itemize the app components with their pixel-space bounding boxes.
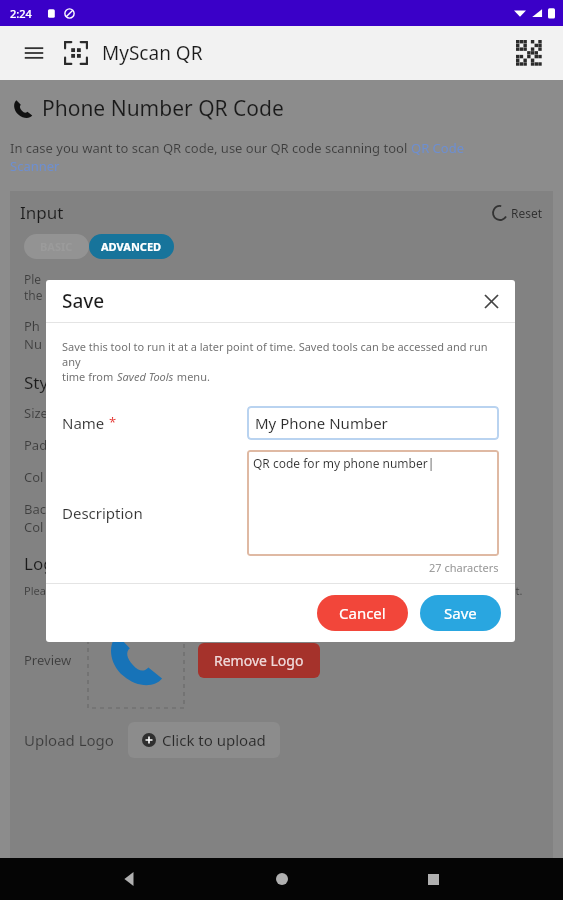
button[interactable]: Recent apps	[411, 858, 455, 900]
button[interactable]: Cancel	[339, 603, 386, 623]
staticText: Saved Tools	[117, 369, 174, 384]
staticText: Cancel	[339, 603, 386, 623]
staticText: QR Code	[411, 139, 465, 157]
staticText: Scanner	[10, 157, 60, 175]
staticText: Sty	[24, 371, 49, 394]
button[interactable]: ADVANCED	[101, 239, 162, 254]
staticText: Input	[20, 201, 64, 224]
staticText: Click to upload	[162, 730, 266, 750]
staticText: Logo	[24, 552, 64, 575]
staticText: Pad	[24, 436, 48, 454]
staticText: Preview	[24, 651, 72, 669]
staticText: Save this tool to run it at a later poin…	[62, 339, 499, 369]
staticText: 27 characters	[429, 560, 499, 575]
staticText: Remove Logo	[214, 651, 304, 670]
staticText: Col	[24, 518, 44, 536]
button[interactable]: Close	[477, 287, 505, 315]
staticText: Col	[24, 468, 44, 486]
staticText: Phone Number QR Code	[42, 94, 284, 123]
staticText: In case you want to scan QR code, use ou…	[10, 139, 411, 157]
button[interactable]: Click to upload	[142, 730, 266, 750]
button[interactable]: Scan QR code	[509, 33, 549, 73]
staticText: Size	[24, 404, 48, 422]
staticText: menu.	[174, 369, 210, 384]
button[interactable]: QR code for my phone number|	[253, 455, 499, 556]
button[interactable]: My Phone Number	[255, 406, 499, 440]
staticText: My Phone Number	[255, 413, 388, 433]
staticText: MyScan QR	[102, 40, 203, 66]
button[interactable]: Remove Logo	[214, 651, 304, 670]
staticText: Upload Logo	[24, 730, 114, 750]
staticText: *	[109, 413, 117, 431]
staticText: Ph	[24, 317, 40, 335]
staticText: Ple	[24, 271, 42, 287]
staticText: Save	[444, 603, 477, 623]
staticText: Description	[62, 503, 143, 523]
staticText: Nu	[24, 335, 42, 353]
staticText: ADVANCED	[101, 239, 162, 254]
staticText: Please upload a logo from your device (s…	[24, 583, 523, 598]
button[interactable]: Back	[108, 858, 152, 900]
button[interactable]: Reset	[493, 205, 543, 221]
staticText: Name	[62, 413, 109, 433]
button[interactable]: Open navigation menu	[14, 33, 54, 73]
button[interactable]: Home	[260, 858, 304, 900]
staticText: 2:24	[10, 6, 32, 21]
button[interactable]: Save	[444, 603, 477, 623]
staticText: Bac	[24, 500, 46, 518]
staticText: the	[24, 287, 43, 303]
staticText: Reset	[511, 205, 543, 221]
staticText: time from	[62, 369, 117, 384]
staticText: QR code for my phone number|	[253, 455, 435, 471]
staticText: Save	[62, 288, 105, 314]
